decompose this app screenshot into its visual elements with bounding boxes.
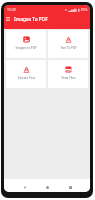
button[interactable]: Extract Text — [6, 60, 46, 88]
button[interactable]: Recent apps — [66, 183, 74, 191]
staticText: View Files — [61, 76, 76, 80]
staticText: 10:30 — [7, 7, 16, 12]
button[interactable]: Images to PDF — [6, 30, 46, 58]
staticText: Text To PDF — [60, 46, 77, 50]
button[interactable]: Open navigation menu — [4, 14, 13, 24]
staticText: Images To PDF — [14, 16, 48, 23]
button[interactable]: Back — [20, 183, 28, 191]
button[interactable]: Home — [43, 183, 51, 191]
staticText: Extract Text — [18, 76, 35, 80]
staticText: ▾ ▂▄▆ ▮ 85% — [65, 7, 88, 12]
button[interactable]: Text To PDF — [48, 30, 88, 58]
button[interactable]: View Files — [48, 60, 88, 88]
staticText: Images to PDF — [15, 46, 37, 50]
